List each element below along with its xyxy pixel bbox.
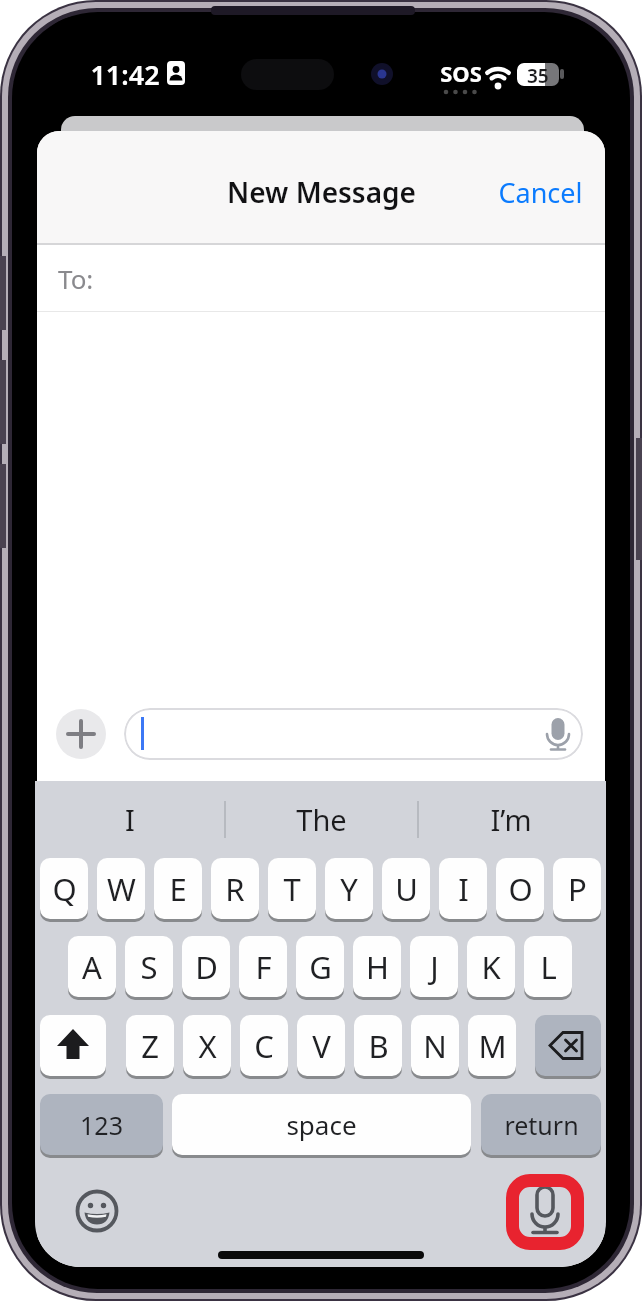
staticText: G xyxy=(309,946,332,988)
button[interactable]: I xyxy=(90,800,170,836)
staticText: W xyxy=(107,868,136,910)
staticText: X xyxy=(198,1025,217,1067)
staticText: space xyxy=(286,1107,357,1142)
button[interactable]: G xyxy=(296,936,344,997)
staticText: K xyxy=(481,946,501,988)
staticText: Q xyxy=(52,868,77,910)
button[interactable]: V xyxy=(297,1015,345,1076)
button[interactable]: X xyxy=(183,1015,231,1076)
button[interactable]: The xyxy=(281,800,361,836)
button[interactable]: W xyxy=(97,858,145,919)
button[interactable]: Y xyxy=(325,858,373,919)
staticText: Y xyxy=(340,868,358,910)
staticText: I xyxy=(458,868,469,910)
staticText: H xyxy=(366,946,389,988)
button[interactable]: 123 xyxy=(40,1094,163,1155)
button[interactable]: D xyxy=(182,936,230,997)
staticText: U xyxy=(395,868,418,910)
staticText: Cancel xyxy=(498,174,583,210)
button[interactable]: To: xyxy=(37,244,605,311)
button[interactable]: I’m xyxy=(471,800,551,836)
staticText: I’m xyxy=(490,800,532,836)
staticText: I xyxy=(125,800,135,836)
staticText: 11:42 xyxy=(90,56,160,90)
staticText: D xyxy=(195,946,218,988)
button[interactable]: P xyxy=(553,858,601,919)
staticText: E xyxy=(169,868,187,910)
staticText: S xyxy=(140,946,158,988)
staticText: R xyxy=(225,868,245,910)
staticText: O xyxy=(508,868,533,910)
staticText: B xyxy=(368,1025,389,1067)
button[interactable]: M xyxy=(468,1015,516,1076)
staticText: SOS xyxy=(440,58,482,88)
staticText: N xyxy=(423,1025,447,1067)
staticText: 35 xyxy=(527,63,549,86)
button[interactable] xyxy=(75,1189,119,1233)
button[interactable]: T xyxy=(268,858,316,919)
staticText: J xyxy=(430,946,439,988)
button[interactable]: C xyxy=(240,1015,288,1076)
button[interactable]: Cancel xyxy=(483,174,583,210)
button[interactable]: L xyxy=(524,936,572,997)
button[interactable]: I xyxy=(439,858,487,919)
button[interactable]: J xyxy=(410,936,458,997)
staticText: New Message xyxy=(227,173,416,211)
staticText: return xyxy=(504,1108,579,1142)
staticText: L xyxy=(540,946,557,988)
staticText: F xyxy=(255,946,272,988)
staticText: The xyxy=(296,800,347,836)
button[interactable]: N xyxy=(411,1015,459,1076)
button[interactable] xyxy=(56,709,106,759)
staticText: To: xyxy=(58,261,94,293)
button[interactable]: H xyxy=(353,936,401,997)
button[interactable]: R xyxy=(211,858,259,919)
button[interactable]: Z xyxy=(126,1015,174,1076)
button[interactable]: K xyxy=(467,936,515,997)
staticText: T xyxy=(283,868,301,910)
button[interactable]: A xyxy=(68,936,116,997)
staticText: P xyxy=(568,868,587,910)
button[interactable]: S xyxy=(125,936,173,997)
button[interactable]: F xyxy=(239,936,287,997)
staticText: C xyxy=(254,1025,274,1067)
staticText: 123 xyxy=(80,1108,123,1142)
button[interactable] xyxy=(506,1174,584,1250)
button[interactable]: U xyxy=(382,858,430,919)
button[interactable]: space xyxy=(172,1094,471,1155)
staticText: V xyxy=(312,1025,331,1067)
button[interactable] xyxy=(535,1015,601,1076)
staticText: Z xyxy=(141,1025,159,1067)
staticText: A xyxy=(82,946,102,988)
button[interactable]: E xyxy=(154,858,202,919)
button[interactable]: Q xyxy=(40,858,88,919)
button[interactable]: return xyxy=(481,1094,601,1155)
button[interactable] xyxy=(40,1015,106,1076)
button[interactable]: O xyxy=(496,858,544,919)
button[interactable] xyxy=(124,708,583,760)
staticText: M xyxy=(478,1025,507,1067)
button[interactable]: B xyxy=(354,1015,402,1076)
